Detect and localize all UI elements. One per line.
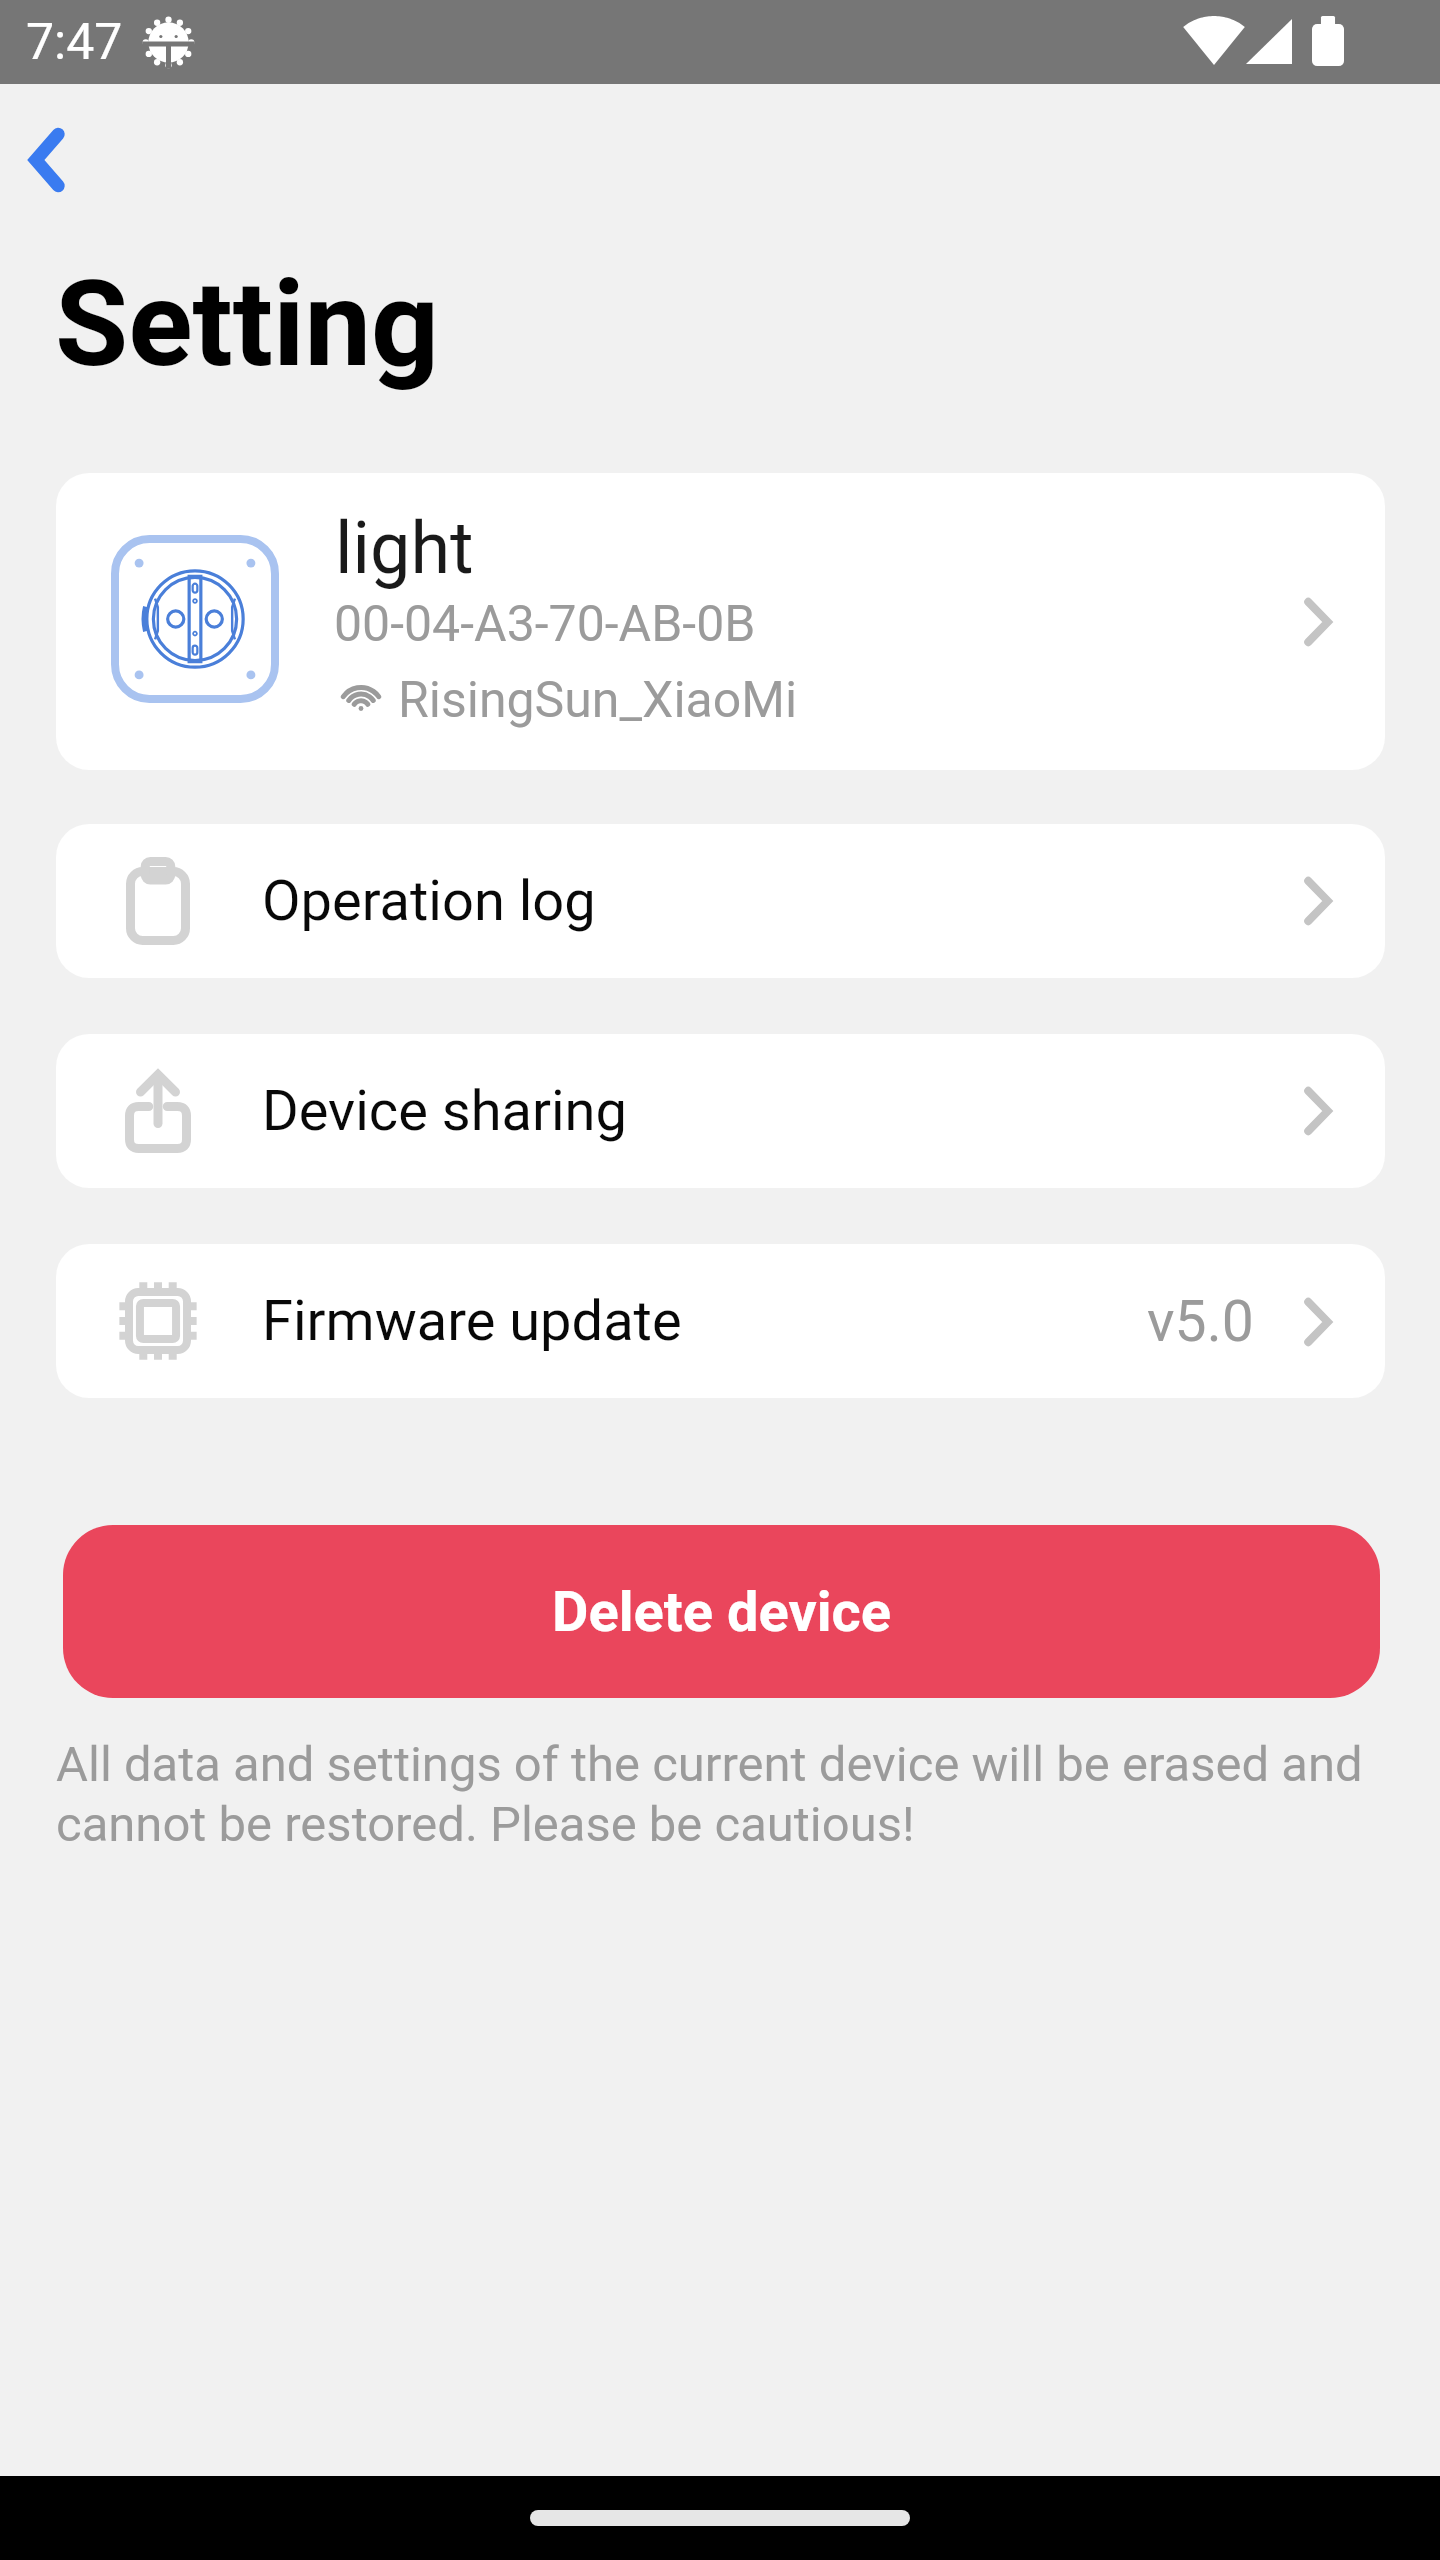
button[interactable]: Delete device [63,1525,1380,1698]
button[interactable]: Firmware update [56,1244,1385,1398]
staticText: Setting [55,255,440,394]
staticText: light [335,506,474,590]
staticText: Device sharing [262,1078,627,1144]
button[interactable]: Back [0,112,95,208]
button[interactable]: Device sharing [56,1034,1385,1188]
staticText: All data and settings of the current dev… [56,1736,1434,1853]
staticText: 7:47 [26,13,123,72]
staticText: RisingSun_XiaoMi [398,671,798,730]
staticText: Operation log [262,868,596,934]
staticText: v5.0 [1147,1288,1254,1355]
button[interactable]: Operation log [56,824,1385,978]
staticText: Delete device [552,1579,892,1645]
staticText: 00-04-A3-70-AB-0B [334,595,756,654]
staticText: Firmware update [262,1288,682,1354]
button[interactable]: light [56,473,1385,770]
